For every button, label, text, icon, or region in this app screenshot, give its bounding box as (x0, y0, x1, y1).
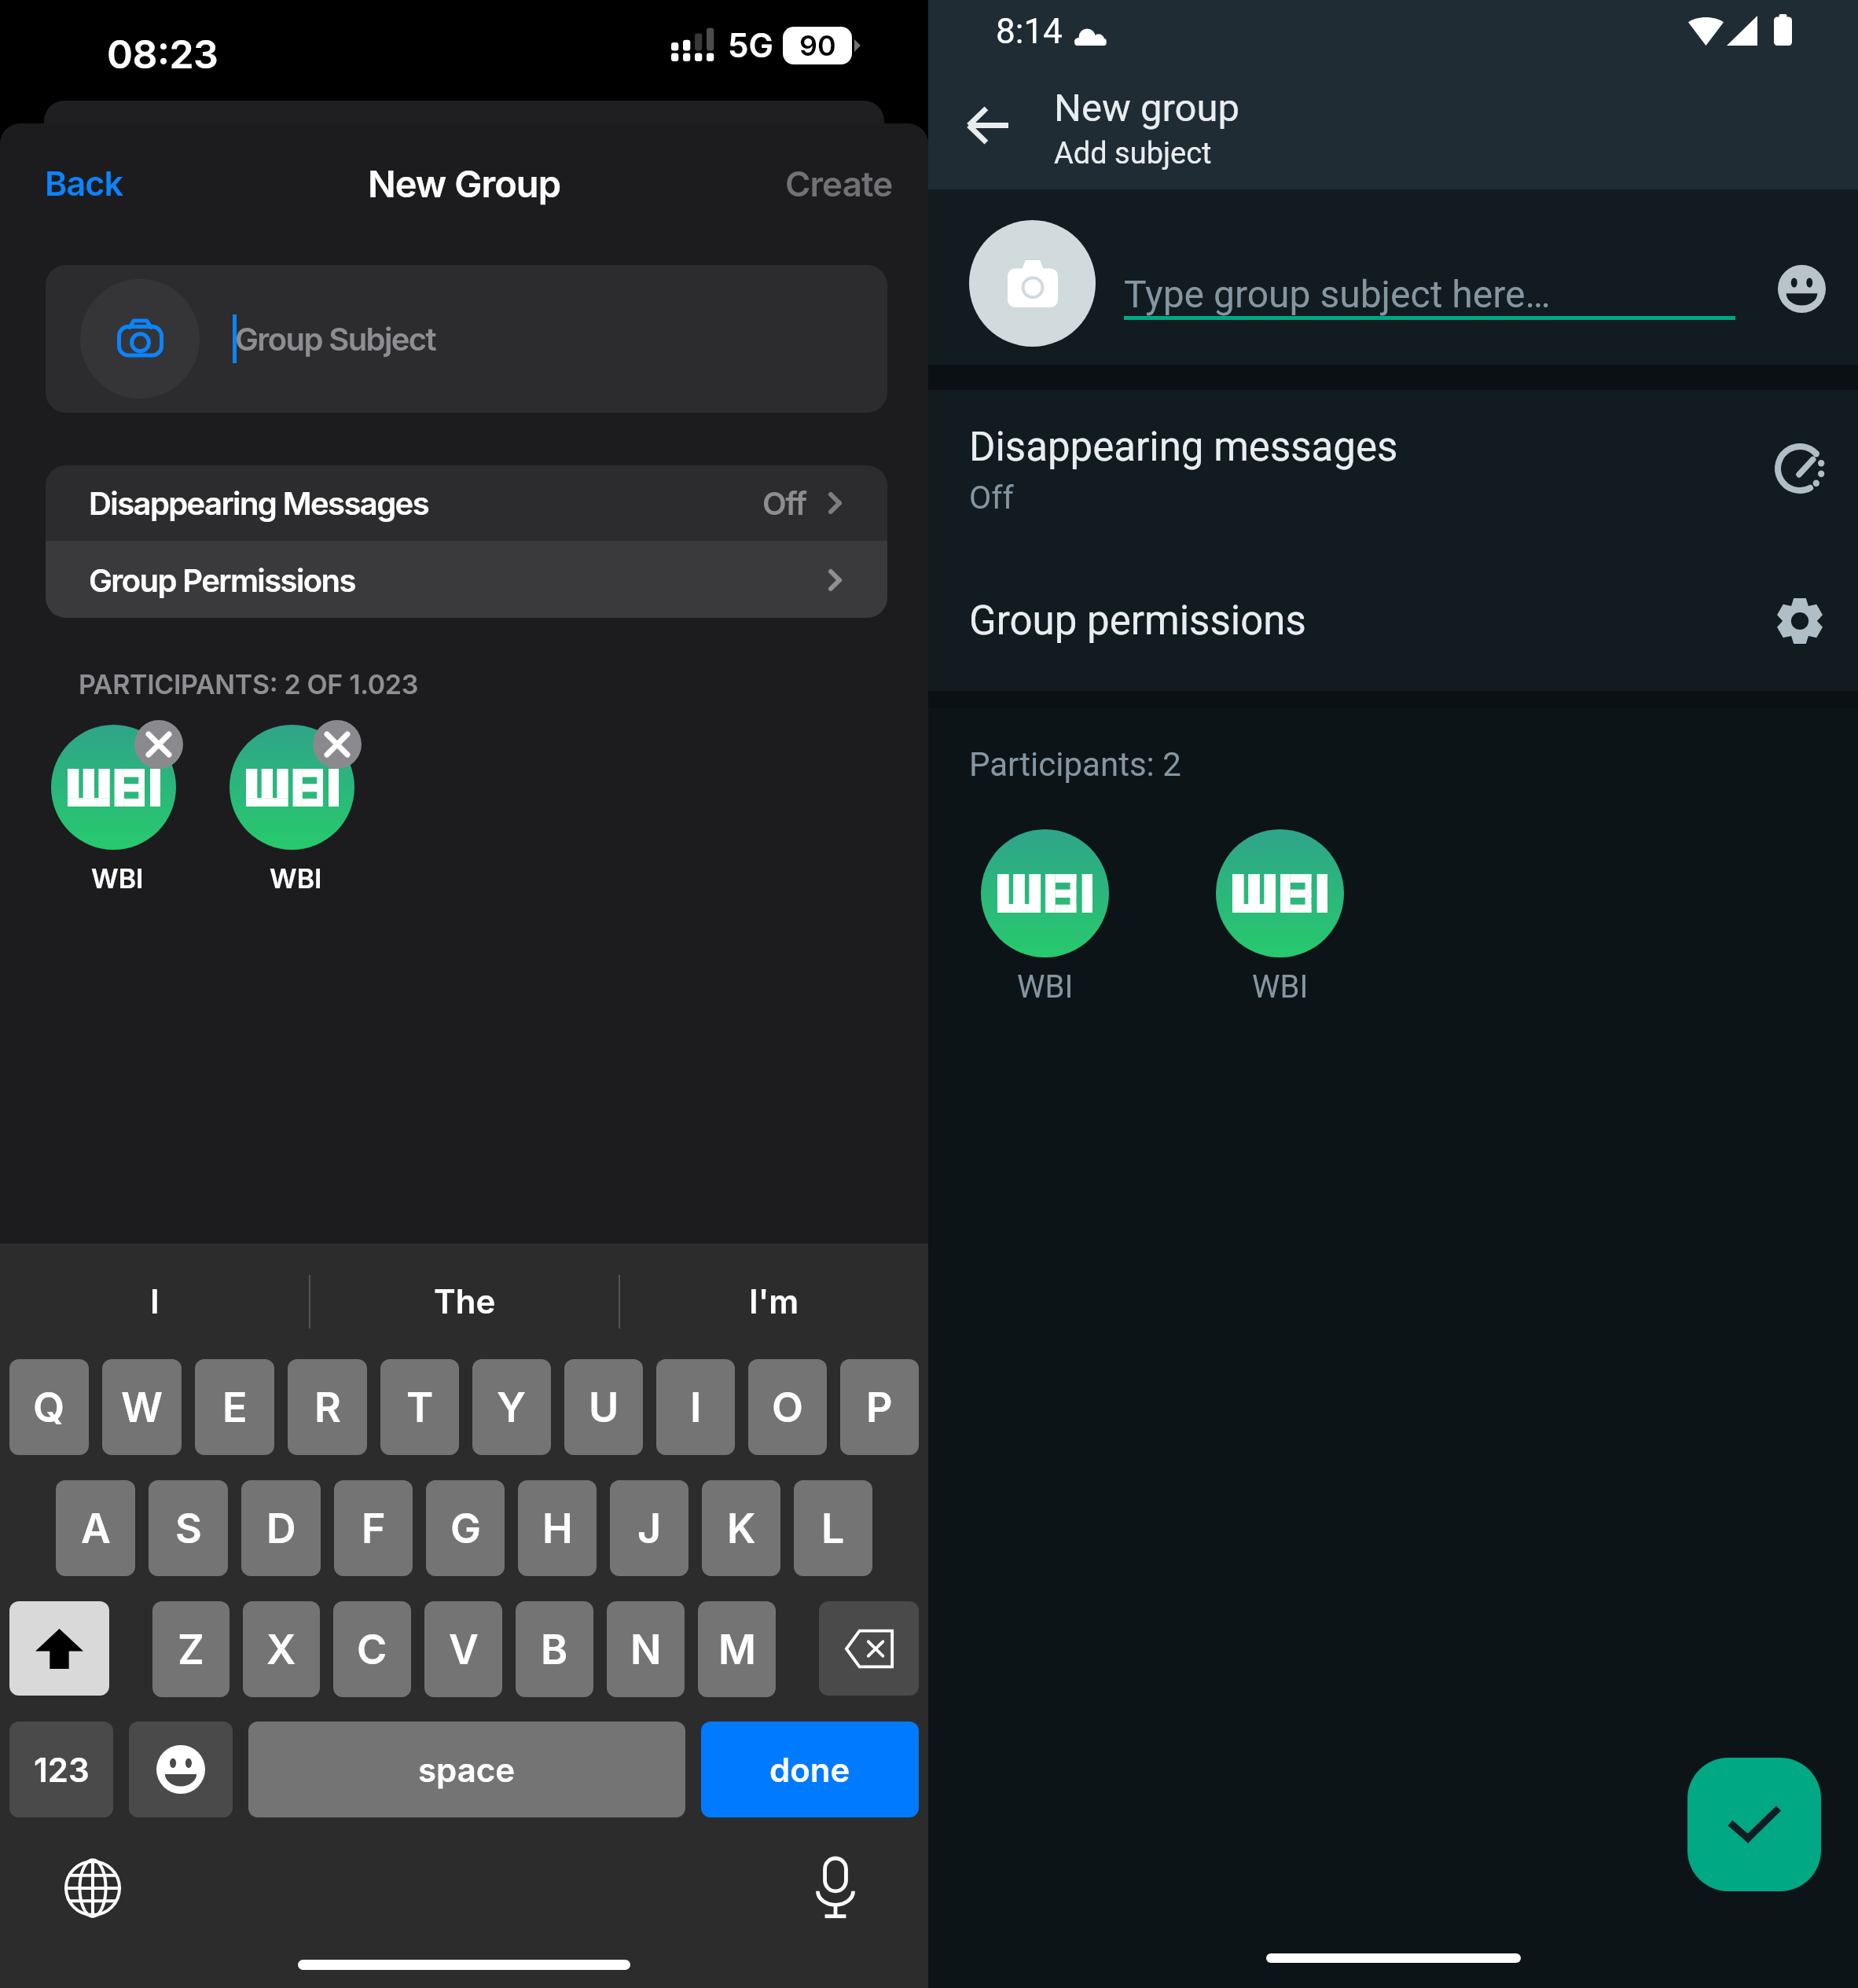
button[interactable]: O (748, 1359, 827, 1455)
button[interactable]: Backspace (819, 1601, 919, 1696)
button[interactable]: Disappearing messages (928, 390, 1858, 550)
staticText: WBI (270, 862, 322, 895)
button[interactable]: Dictation (804, 1857, 867, 1920)
button[interactable]: B (516, 1601, 593, 1697)
button[interactable]: Remove participant (134, 720, 183, 769)
button[interactable]: Create (776, 156, 902, 211)
staticText: Participants: 2 (969, 745, 1181, 784)
staticText: I (150, 1281, 160, 1321)
staticText: PARTICIPANTS: 2 OF 1.023 (79, 668, 418, 700)
button[interactable]: Shift (9, 1601, 109, 1696)
staticText: 5G (728, 25, 773, 65)
button[interactable]: J (610, 1480, 688, 1576)
button[interactable]: Create group (1687, 1758, 1821, 1891)
button[interactable]: H (518, 1480, 597, 1576)
button[interactable]: T (380, 1359, 459, 1455)
button[interactable]: Change keyboard (61, 1857, 124, 1920)
button[interactable]: I (656, 1359, 735, 1455)
staticText: Add subject (1054, 136, 1212, 171)
staticText: D (266, 1504, 296, 1553)
staticText: 123 (34, 1750, 90, 1790)
staticText: New Group (368, 161, 561, 206)
staticText: P (866, 1383, 893, 1432)
staticText: G (450, 1504, 481, 1553)
button[interactable]: U (564, 1359, 643, 1455)
button[interactable]: R (288, 1359, 367, 1455)
staticText: R (314, 1383, 341, 1432)
button[interactable]: Y (472, 1359, 551, 1455)
button[interactable]: Group Subject (46, 265, 887, 413)
button[interactable]: G (426, 1480, 505, 1576)
button[interactable]: S (149, 1480, 228, 1576)
staticText: Disappearing messages (969, 424, 1398, 471)
staticText: WBI (1252, 968, 1309, 1005)
button[interactable]: A (56, 1480, 135, 1576)
button[interactable]: Group permissions (928, 550, 1858, 691)
staticText: O (772, 1383, 803, 1432)
button[interactable]: E (195, 1359, 274, 1455)
staticText: V (449, 1625, 479, 1674)
staticText: X (266, 1625, 296, 1674)
staticText: K (727, 1504, 756, 1553)
staticText: A (81, 1504, 111, 1553)
button[interactable]: done (701, 1722, 919, 1817)
button[interactable]: I'm (620, 1244, 928, 1359)
staticText: W (121, 1383, 163, 1432)
staticText: Z (178, 1625, 204, 1674)
button[interactable]: K (702, 1480, 780, 1576)
button[interactable]: Group Permissions (46, 542, 887, 618)
button[interactable]: 123 (9, 1722, 113, 1817)
staticText: WBI (1017, 968, 1074, 1005)
button[interactable]: The (310, 1244, 619, 1359)
staticText: J (637, 1504, 662, 1553)
staticText: Type group subject here… (1124, 272, 1551, 316)
button[interactable]: C (333, 1601, 411, 1697)
staticText: M (718, 1625, 756, 1674)
staticText: C (357, 1625, 387, 1674)
staticText: Create (785, 163, 893, 204)
staticText: Y (497, 1383, 527, 1432)
staticText: 8:14 (996, 11, 1063, 52)
staticText: E (222, 1383, 248, 1432)
staticText: S (175, 1504, 202, 1553)
button[interactable]: Emoji (129, 1722, 233, 1817)
button[interactable]: I (0, 1244, 309, 1359)
button[interactable]: Add group icon (969, 220, 1096, 347)
staticText: 08:23 (107, 31, 218, 78)
staticText: F (362, 1504, 386, 1553)
button[interactable]: X (243, 1601, 320, 1697)
button[interactable] (981, 829, 1109, 957)
staticText: N (630, 1625, 662, 1674)
staticText: Off (762, 484, 806, 522)
staticText: Back (45, 163, 123, 204)
button[interactable] (51, 725, 176, 850)
button[interactable]: F (334, 1480, 413, 1576)
button[interactable]: V (424, 1601, 502, 1697)
button[interactable]: Disappearing Messages (46, 465, 887, 541)
staticText: Group Permissions (89, 561, 355, 599)
button[interactable]: L (794, 1480, 872, 1576)
staticText: Group permissions (969, 597, 1306, 645)
button[interactable]: Z (152, 1601, 229, 1697)
button[interactable] (229, 725, 354, 850)
button[interactable]: Back (35, 156, 132, 210)
button[interactable]: Emoji (1778, 265, 1826, 313)
button[interactable]: space (248, 1722, 685, 1817)
staticText: The (434, 1281, 496, 1321)
staticText: U (589, 1383, 619, 1432)
staticText: I (690, 1383, 702, 1432)
button[interactable]: N (607, 1601, 685, 1697)
staticText: done (769, 1750, 850, 1790)
button[interactable]: Back (950, 87, 1026, 163)
staticText: L (821, 1504, 845, 1553)
button[interactable]: D (241, 1480, 321, 1576)
button[interactable]: P (840, 1359, 919, 1455)
staticText: space (418, 1750, 516, 1790)
button[interactable]: Q (9, 1359, 89, 1455)
button[interactable]: Remove participant (313, 720, 362, 769)
button[interactable] (1216, 829, 1344, 957)
button[interactable]: M (698, 1601, 776, 1697)
staticText: Q (33, 1383, 65, 1432)
staticText: New group (1054, 86, 1240, 130)
button[interactable]: W (102, 1359, 182, 1455)
